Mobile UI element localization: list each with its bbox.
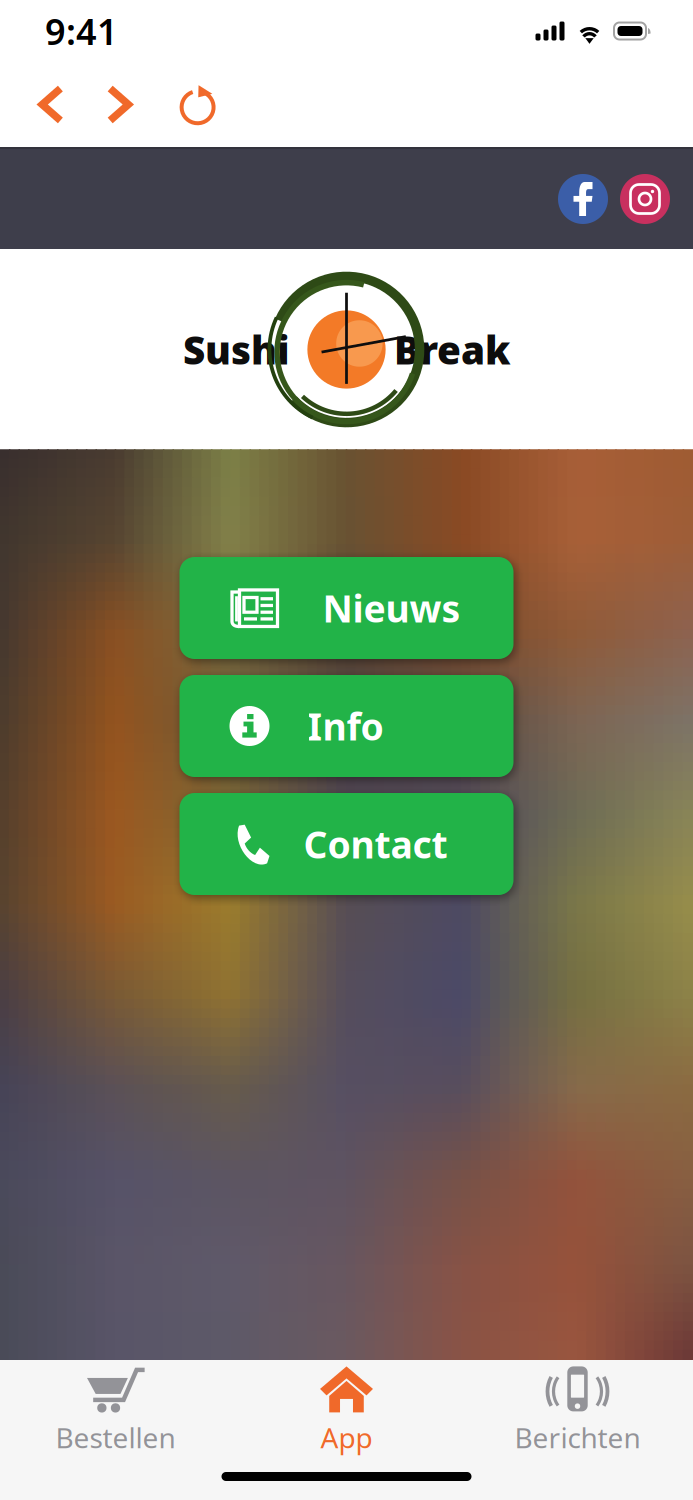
staticText: Break xyxy=(394,324,510,375)
staticText: Info xyxy=(307,701,383,751)
button[interactable]: Reload xyxy=(170,81,230,127)
button[interactable]: Facebook xyxy=(558,174,608,224)
button[interactable]: Nieuws xyxy=(179,557,513,659)
staticText: App xyxy=(320,1419,372,1456)
button[interactable]: Berichten xyxy=(462,1366,693,1454)
button[interactable]: Instagram xyxy=(608,174,670,224)
staticText: Nieuws xyxy=(322,583,460,633)
staticText: Bestellen xyxy=(55,1419,175,1456)
button[interactable]: Back xyxy=(0,83,106,125)
staticText: Sushi xyxy=(183,324,290,375)
button[interactable]: Bestellen xyxy=(0,1366,231,1454)
staticText: 9:41 xyxy=(45,7,118,55)
staticText: Contact xyxy=(303,819,447,869)
button[interactable]: App xyxy=(231,1366,462,1454)
button[interactable]: Forward xyxy=(106,83,170,125)
button[interactable]: Contact xyxy=(179,793,513,895)
staticText: Berichten xyxy=(514,1419,640,1456)
button[interactable]: Info xyxy=(179,675,513,777)
